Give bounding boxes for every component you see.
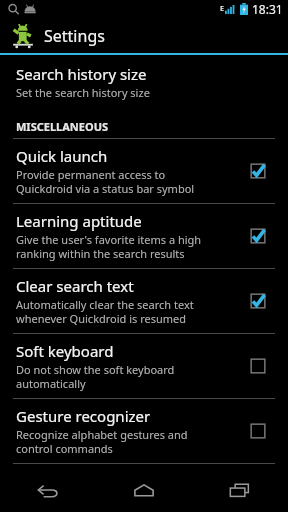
other: App icon xyxy=(10,23,36,49)
button[interactable]: Unchecked xyxy=(240,413,276,449)
staticText: Give the user's favorite items a high ra… xyxy=(16,232,202,261)
staticText: Soft keyboard xyxy=(16,341,114,361)
button[interactable]: Checked xyxy=(240,218,276,254)
button[interactable]: App icon xyxy=(0,18,288,53)
button[interactable]: Checked xyxy=(240,153,276,189)
button[interactable]: Quick launch xyxy=(0,139,288,203)
staticText: 18:31 xyxy=(252,1,283,17)
button[interactable]: Search history size xyxy=(0,55,288,110)
staticText: E xyxy=(220,4,224,14)
button[interactable]: Unchecked xyxy=(240,348,276,384)
staticText: Settings xyxy=(44,25,105,47)
staticText: Recognize alphabet gestures and control … xyxy=(16,427,188,456)
staticText: Search history size xyxy=(16,64,147,84)
button[interactable]: Checked xyxy=(240,283,276,319)
staticText: Quick launch xyxy=(16,146,108,166)
button[interactable]: Recent apps xyxy=(192,468,288,512)
staticText: Do not show the soft keyboard automatica… xyxy=(16,362,175,391)
staticText: MISCELLANEOUS xyxy=(16,119,109,134)
staticText: Set the search history size xyxy=(16,85,150,100)
button[interactable]: Back xyxy=(0,468,96,512)
staticText: Clear search text xyxy=(16,276,134,296)
staticText: Learning aptitude xyxy=(16,211,142,231)
staticText: Automatically clear the search text when… xyxy=(16,297,194,326)
button[interactable]: Home xyxy=(96,468,192,512)
button[interactable]: Clear search text xyxy=(0,269,288,333)
button[interactable]: Gesture recognizer xyxy=(0,399,288,463)
staticText: Gesture recognizer xyxy=(16,406,151,426)
button[interactable]: Learning aptitude xyxy=(0,204,288,268)
staticText: Provide permanent access to Quickdroid v… xyxy=(16,167,195,196)
button[interactable]: Soft keyboard xyxy=(0,334,288,398)
